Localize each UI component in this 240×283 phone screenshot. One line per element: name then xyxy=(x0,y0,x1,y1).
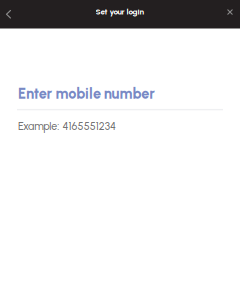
staticText: Enter mobile number xyxy=(18,85,155,102)
button[interactable]: Back xyxy=(0,0,17,28)
staticText: Set your login xyxy=(95,7,144,17)
button[interactable]: Close xyxy=(220,0,240,28)
staticText: Example: 4165551234 xyxy=(18,120,116,133)
